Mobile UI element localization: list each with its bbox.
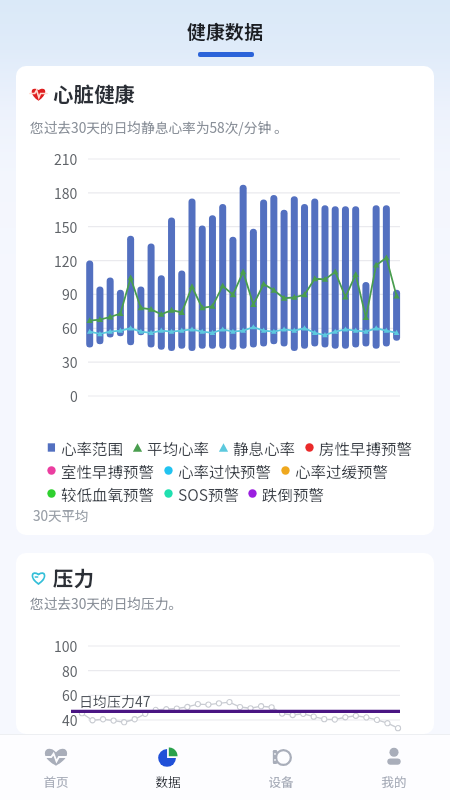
staticText: 较低血氧预警	[61, 483, 155, 505]
staticText: 30天平均	[33, 505, 89, 525]
button[interactable]: 设备	[224, 735, 337, 800]
staticText: 静息心率	[233, 437, 296, 459]
staticText: 您过去30天的日均静息心率为58次/分钟 。	[30, 117, 288, 137]
staticText: 数据	[155, 772, 181, 790]
staticText: 设备	[268, 772, 294, 790]
staticText: 平均心率	[147, 437, 210, 459]
staticText: 室性早搏预警	[61, 460, 155, 482]
staticText: 我的	[381, 772, 407, 790]
staticText: 房性早搏预警	[319, 437, 413, 459]
staticText: 首页	[43, 772, 69, 790]
button[interactable]: 首页	[0, 735, 112, 800]
staticText: 压力	[53, 562, 94, 592]
button[interactable]: 数据	[112, 735, 224, 800]
staticText: 您过去30天的日均压力。	[30, 593, 183, 613]
staticText: 跌倒预警	[262, 483, 325, 505]
staticText: 心率范围	[61, 437, 124, 459]
staticText: 健康数据	[187, 17, 264, 45]
button[interactable]: 我的	[337, 735, 450, 800]
staticText: 心率过快预警	[178, 460, 272, 482]
staticText: 心率过缓预警	[295, 460, 389, 482]
staticText: 心脏健康	[53, 78, 135, 108]
staticText: SOS预警	[178, 483, 239, 505]
